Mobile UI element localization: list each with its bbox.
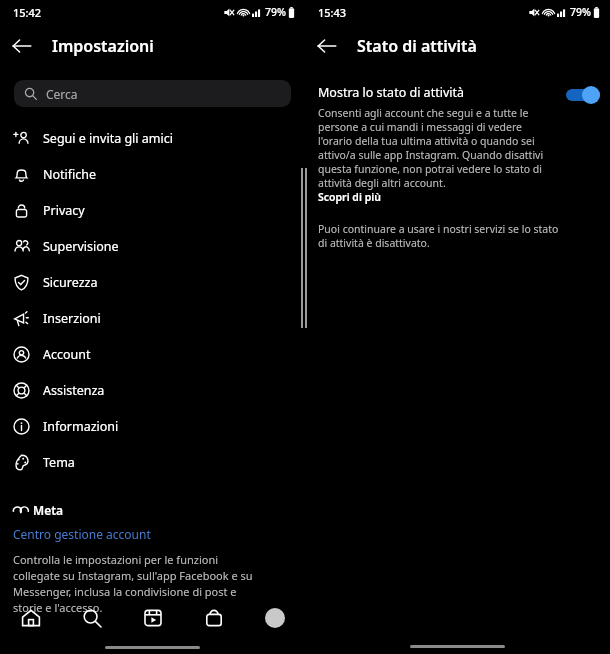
button[interactable]: Reels <box>136 601 170 635</box>
button[interactable]: Inserzioni <box>0 300 305 336</box>
staticText: Segui e invita gli amici <box>43 130 173 147</box>
button[interactable]: Indietro <box>305 24 349 68</box>
staticText: 15:43 <box>318 5 347 20</box>
staticText: Informazioni <box>43 418 119 435</box>
staticText: Cerca <box>46 86 78 102</box>
button[interactable]: Sicurezza <box>0 264 305 300</box>
button[interactable]: Informazioni <box>0 408 305 444</box>
button[interactable]: Centro gestione account <box>13 526 151 542</box>
button[interactable]: Home <box>14 601 48 635</box>
button[interactable]: Cerca <box>75 601 109 635</box>
staticText: Privacy <box>43 202 85 219</box>
staticText: Tema <box>43 454 75 471</box>
button[interactable]: Privacy <box>0 192 305 228</box>
button[interactable]: Tema <box>0 444 305 480</box>
staticText: Impostazioni <box>52 35 154 57</box>
button[interactable]: Attiva stato di attività <box>566 86 600 104</box>
staticText: 79% <box>570 5 591 19</box>
staticText: 79% <box>265 5 286 19</box>
staticText: Consenti agli account che segui e a tutt… <box>318 106 556 190</box>
button[interactable]: Notifiche <box>0 156 305 192</box>
button[interactable]: Cerca <box>14 80 291 107</box>
staticText: Sicurezza <box>43 274 98 291</box>
button[interactable]: Scopri di più <box>318 190 381 204</box>
staticText: Meta <box>33 502 64 518</box>
staticText: Account <box>43 346 91 363</box>
staticText: Mostra lo stato di attività <box>318 84 464 101</box>
button[interactable]: Shop <box>197 601 231 635</box>
staticText: Puoi continuare a usare i nostri servizi… <box>318 222 562 250</box>
staticText: Notifiche <box>43 166 97 183</box>
button[interactable]: Mostra lo stato di attività <box>305 84 610 204</box>
button[interactable]: Segui e invita gli amici <box>0 120 305 156</box>
staticText: Centro gestione account <box>13 526 151 542</box>
staticText: 15:42 <box>13 5 42 20</box>
staticText: Assistenza <box>43 382 105 399</box>
button[interactable]: Supervisione <box>0 228 305 264</box>
button[interactable]: Indietro <box>0 24 44 68</box>
staticText: Supervisione <box>43 238 119 255</box>
button[interactable]: Assistenza <box>0 372 305 408</box>
staticText: Inserzioni <box>43 310 101 327</box>
staticText: Controlla le impostazioni per le funzion… <box>13 552 265 615</box>
staticText: Stato di attività <box>357 35 477 57</box>
button[interactable]: Account <box>0 336 305 372</box>
button[interactable]: Profilo <box>258 601 292 635</box>
